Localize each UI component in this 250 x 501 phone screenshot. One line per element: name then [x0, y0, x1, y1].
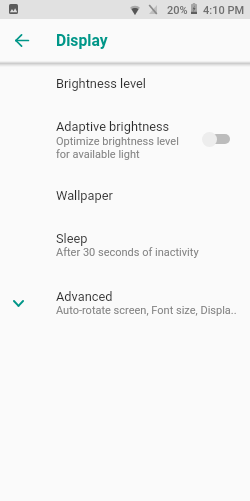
staticText: After 30 seconds of inactivity	[56, 246, 199, 259]
button[interactable]: Sleep	[0, 220, 250, 265]
button[interactable]: Brightness level	[0, 65, 250, 98]
staticText: Display	[56, 31, 108, 49]
staticText: Wallpaper	[56, 188, 113, 203]
staticText: Adaptive brightness	[56, 119, 170, 134]
staticText: 20%	[167, 4, 188, 17]
staticText: 4:10 PM	[203, 4, 245, 17]
staticText: Advanced	[56, 289, 113, 304]
button[interactable]: Advanced	[0, 278, 250, 323]
button[interactable]: Back	[6, 19, 38, 62]
button[interactable]: Adaptive brightness toggle	[198, 128, 236, 152]
button[interactable]: Wallpaper	[0, 177, 250, 210]
staticText: Auto-rotate screen, Font size, Displa..	[56, 304, 237, 317]
staticText: Optimize brightness level for available …	[56, 135, 179, 161]
button[interactable]: Adaptive brightness	[0, 108, 250, 165]
staticText: Brightness level	[56, 76, 146, 91]
staticText: Sleep	[56, 231, 88, 246]
